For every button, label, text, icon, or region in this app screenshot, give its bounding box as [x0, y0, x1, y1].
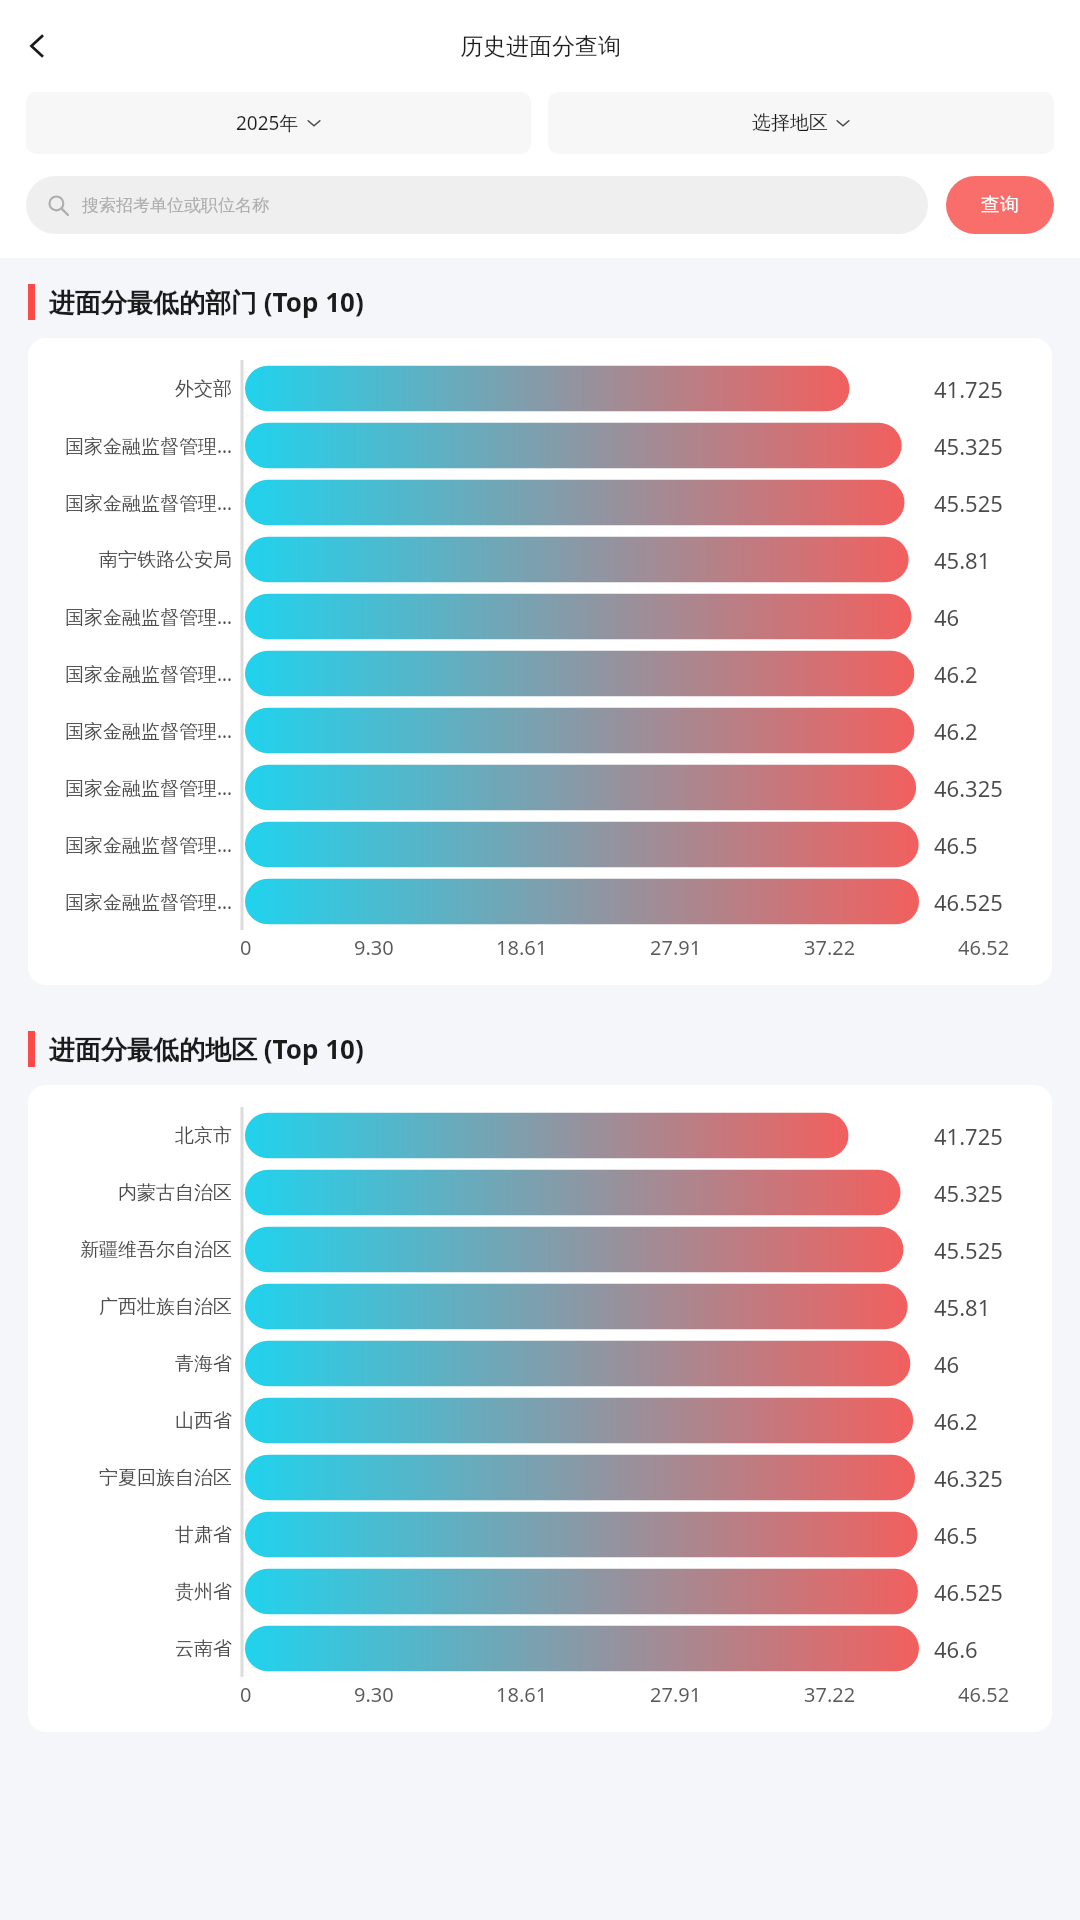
staticText: 国家金融监督管理…	[28, 775, 232, 801]
staticText: 国家金融监督管理…	[28, 718, 232, 744]
staticText: 选择地区	[752, 111, 828, 135]
staticText: 山西省	[28, 1409, 232, 1433]
staticText: 9.30	[354, 934, 394, 961]
staticText: 46.6	[934, 1634, 1052, 1664]
staticText: 27.91	[650, 1681, 702, 1708]
staticText: 46	[934, 602, 1052, 632]
staticText: 青海省	[28, 1352, 232, 1376]
staticText: 历史进面分查询	[460, 32, 621, 61]
staticText: 46.2	[934, 716, 1052, 746]
staticText: 37.22	[804, 1681, 856, 1708]
button[interactable]: Back	[8, 17, 66, 75]
staticText: 宁夏回族自治区	[28, 1466, 232, 1490]
staticText: 国家金融监督管理…	[28, 889, 232, 915]
staticText: 37.22	[804, 934, 856, 961]
staticText: 46.325	[934, 773, 1052, 803]
staticText: 41.725	[934, 1121, 1052, 1151]
staticText: 国家金融监督管理…	[28, 832, 232, 858]
staticText: 46.52	[958, 934, 1010, 961]
staticText: 国家金融监督管理…	[28, 604, 232, 630]
button[interactable]: 2025年	[26, 92, 531, 154]
staticText: 45.525	[934, 488, 1052, 518]
button[interactable]: 选择地区	[548, 92, 1054, 154]
staticText: 贵州省	[28, 1580, 232, 1604]
staticText: 27.91	[650, 934, 702, 961]
staticText: 18.61	[496, 934, 548, 961]
staticText: 0	[240, 934, 252, 961]
staticText: 46.325	[934, 1463, 1052, 1493]
staticText: 0	[240, 1681, 252, 1708]
staticText: 搜索招考单位或职位名称	[82, 195, 269, 216]
staticText: 国家金融监督管理…	[28, 490, 232, 516]
staticText: 查询	[981, 193, 1019, 217]
staticText: 46.2	[934, 659, 1052, 689]
button[interactable]: 查询	[946, 176, 1054, 234]
staticText: 云南省	[28, 1637, 232, 1661]
staticText: 45.81	[934, 545, 1052, 575]
staticText: 进面分最低的部门 (Top 10)	[49, 284, 364, 320]
staticText: 2025年	[236, 110, 299, 136]
staticText: 46.5	[934, 830, 1052, 860]
staticText: 45.81	[934, 1292, 1052, 1322]
staticText: 国家金融监督管理…	[28, 433, 232, 459]
button[interactable]: 搜索招考单位或职位名称	[26, 176, 928, 234]
staticText: 内蒙古自治区	[28, 1181, 232, 1205]
staticText: 18.61	[496, 1681, 548, 1708]
staticText: 45.325	[934, 1178, 1052, 1208]
staticText: 46.5	[934, 1520, 1052, 1550]
staticText: 9.30	[354, 1681, 394, 1708]
staticText: 新疆维吾尔自治区	[28, 1238, 232, 1262]
staticText: 46.2	[934, 1406, 1052, 1436]
staticText: 外交部	[28, 377, 232, 401]
staticText: 甘肃省	[28, 1523, 232, 1547]
staticText: 45.525	[934, 1235, 1052, 1265]
staticText: 国家金融监督管理…	[28, 661, 232, 687]
staticText: 南宁铁路公安局	[28, 548, 232, 572]
staticText: 广西壮族自治区	[28, 1295, 232, 1319]
staticText: 46.525	[934, 887, 1052, 917]
staticText: 46	[934, 1349, 1052, 1379]
staticText: 46.525	[934, 1577, 1052, 1607]
staticText: 41.725	[934, 374, 1052, 404]
staticText: 北京市	[28, 1124, 232, 1148]
staticText: 进面分最低的地区 (Top 10)	[49, 1031, 364, 1067]
staticText: 46.52	[958, 1681, 1010, 1708]
staticText: 45.325	[934, 431, 1052, 461]
